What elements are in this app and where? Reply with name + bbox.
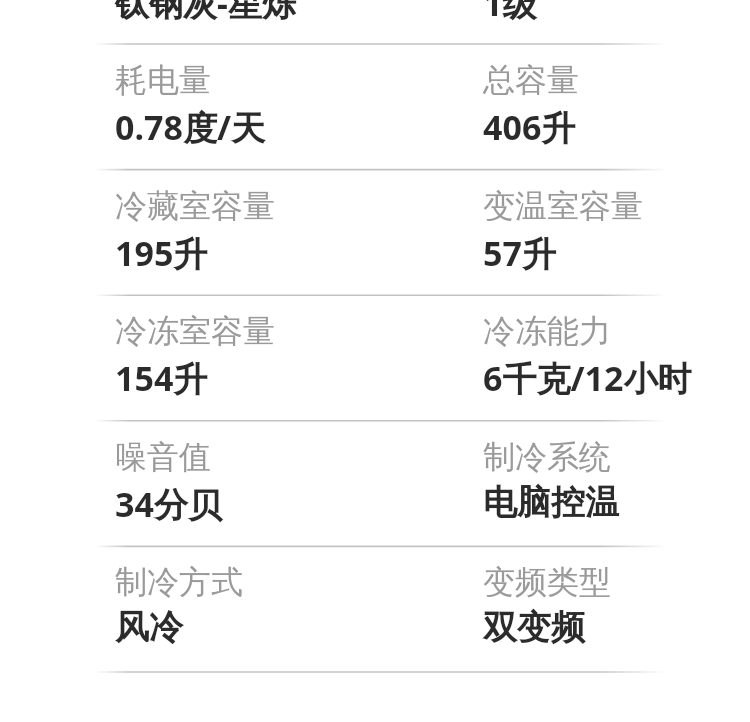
button[interactable]: 风冷 [115, 606, 183, 649]
staticText: 0.78度/天 [115, 104, 266, 150]
button[interactable]: 冷冻室容量 [115, 311, 275, 351]
staticText: 制冷方式 [115, 562, 243, 602]
staticText: 冷冻室容量 [115, 311, 275, 351]
button[interactable]: 制冷系统 [483, 437, 611, 477]
staticText: 耗电量 [115, 60, 211, 100]
button[interactable]: 电脑控温 [483, 481, 619, 524]
button[interactable]: 1级 [483, 0, 537, 26]
staticText: 噪音值 [115, 437, 211, 477]
staticText: 57升 [483, 230, 556, 276]
button[interactable]: 冷藏室容量 [115, 186, 275, 226]
staticText: 195升 [115, 230, 208, 276]
staticText: 变频类型 [483, 562, 611, 602]
button[interactable]: 冷冻能力 [483, 311, 611, 351]
button[interactable]: 195升 [115, 230, 208, 276]
staticText: 1级 [483, 0, 537, 26]
staticText: 总容量 [483, 60, 579, 100]
staticText: 变温室容量 [483, 186, 643, 226]
staticText: 34分贝 [115, 481, 222, 527]
button[interactable]: 0.78度/天 [115, 104, 266, 150]
staticText: 冷藏室容量 [115, 186, 275, 226]
staticText: 154升 [115, 355, 208, 401]
staticText: 冷冻能力 [483, 311, 611, 351]
button[interactable]: 总容量 [483, 60, 579, 100]
staticText: 钛钢灰-星烁 [115, 0, 296, 26]
button[interactable]: 变温室容量 [483, 186, 643, 226]
button[interactable]: 耗电量 [115, 60, 211, 100]
button[interactable]: 6千克/12小时 [483, 355, 692, 401]
button[interactable]: 双变频 [483, 606, 585, 649]
staticText: 6千克/12小时 [483, 355, 692, 401]
button[interactable]: 154升 [115, 355, 208, 401]
button[interactable]: 57升 [483, 230, 556, 276]
button[interactable]: 变频类型 [483, 562, 611, 602]
staticText: 制冷系统 [483, 437, 611, 477]
button[interactable]: 制冷方式 [115, 562, 243, 602]
button[interactable]: 噪音值 [115, 437, 211, 477]
staticText: 双变频 [483, 606, 585, 649]
button[interactable]: 406升 [483, 104, 576, 150]
button[interactable]: 34分贝 [115, 481, 222, 527]
staticText: 406升 [483, 104, 576, 150]
button[interactable]: 钛钢灰-星烁 [115, 0, 296, 26]
staticText: 风冷 [115, 606, 183, 649]
staticText: 电脑控温 [483, 481, 619, 524]
